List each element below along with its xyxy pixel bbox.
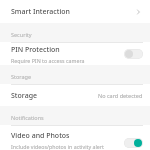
staticText: PIN Protection <box>11 45 60 55</box>
button[interactable]: PIN Protection <box>0 43 150 65</box>
staticText: Security <box>11 31 32 38</box>
staticText: Storage <box>11 73 32 80</box>
staticText: Storage <box>11 91 98 101</box>
staticText: Video and Photos <box>11 131 70 141</box>
staticText: Include videos/photos in activity alert … <box>11 143 121 150</box>
staticText: Require PIN to access camera <box>11 57 85 64</box>
staticText: No card detected <box>98 92 143 99</box>
button[interactable]: Toggle off <box>124 49 143 59</box>
staticText: Notifications <box>11 114 44 121</box>
staticText: Smart Interaction <box>11 7 135 17</box>
button[interactable]: Video and Photos <box>0 126 150 150</box>
button[interactable]: Toggle on <box>124 138 143 148</box>
button[interactable]: Smart Interaction <box>0 0 150 23</box>
button[interactable]: Storage <box>0 85 150 106</box>
